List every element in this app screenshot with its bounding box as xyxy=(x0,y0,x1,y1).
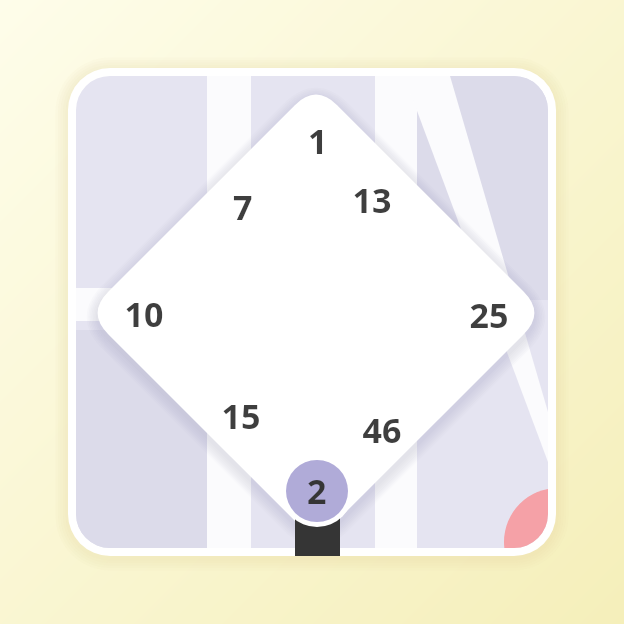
button[interactable]: Navigation map tile with numbered waypoi… xyxy=(0,0,624,624)
